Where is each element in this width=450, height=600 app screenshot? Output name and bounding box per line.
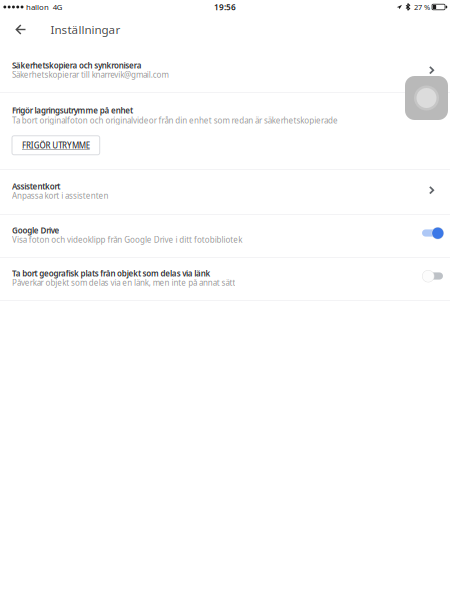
- staticText: hallon: [26, 2, 49, 12]
- staticText: Frigör lagringsutrymme på enhet: [12, 105, 133, 116]
- button[interactable]: Säkerhetskopiera och synkronisera: [0, 45, 450, 92]
- staticText: Påverkar objekt som delas via en länk, m…: [12, 277, 235, 288]
- staticText: 4G: [53, 2, 63, 12]
- button[interactable]: Google Drive: [0, 215, 450, 257]
- staticText: Visa foton och videoklipp från Google Dr…: [12, 234, 242, 245]
- button[interactable]: AssistiveTouch: [405, 76, 448, 120]
- staticText: Assistentkort: [12, 181, 60, 192]
- staticText: Google Drive: [12, 225, 59, 236]
- button[interactable]: Ta bort geografisk plats, av: [422, 270, 443, 282]
- staticText: Ta bort geografisk plats från objekt som…: [12, 268, 211, 279]
- staticText: Anpassa kort i assistenten: [12, 190, 108, 201]
- staticText: Säkerhetskopierar till knarrevik@gmail.c…: [12, 69, 169, 80]
- staticText: Inställningar: [50, 22, 120, 37]
- staticText: Ta bort originalfoton och originalvideor…: [12, 115, 338, 126]
- staticText: FRIGÖR UTRYMME: [22, 140, 90, 151]
- button[interactable]: FRIGÖR UTRYMME: [12, 136, 100, 155]
- staticText: 19:56: [214, 1, 236, 13]
- button[interactable]: Back: [0, 14, 42, 45]
- button[interactable]: Assistentkort: [0, 170, 450, 214]
- button[interactable]: Ta bort geografisk plats från objekt som…: [0, 258, 450, 300]
- staticText: Säkerhetskopiera och synkronisera: [12, 60, 142, 71]
- button[interactable]: Google Drive, på: [422, 227, 443, 239]
- staticText: 27 %: [414, 2, 430, 12]
